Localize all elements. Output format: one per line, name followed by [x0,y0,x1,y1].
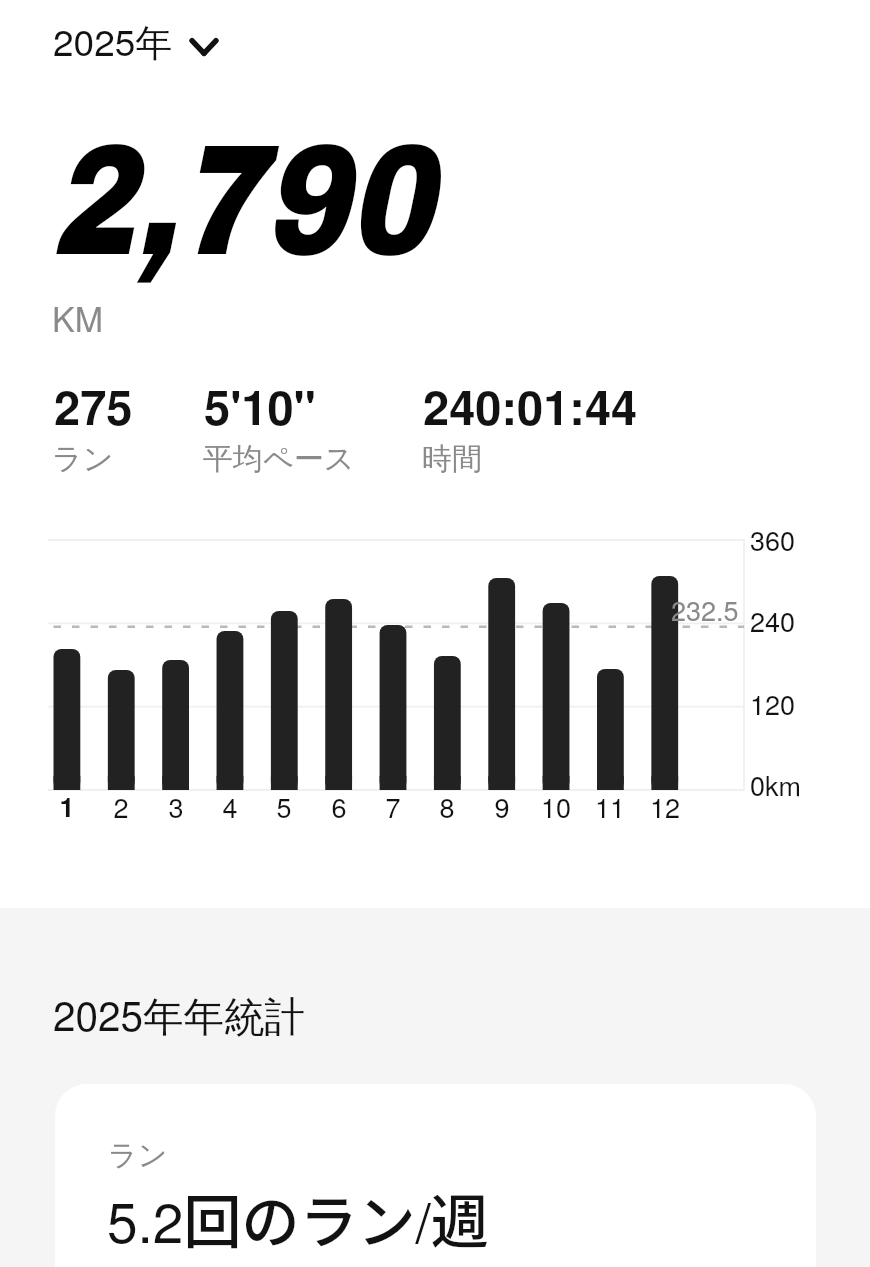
staticText: 4 [200,787,260,826]
staticText: 240 [750,601,796,640]
staticText: 2,790 [50,116,433,287]
button[interactable]: 2025年 [45,8,226,73]
staticText: 10 [526,787,586,826]
staticText: 0km [750,765,802,804]
staticText: 2025年年統計 [53,985,306,1044]
button[interactable]: ラン [55,1084,816,1267]
staticText: 240:01:44 [423,372,638,439]
staticText: 時間 [422,440,482,478]
staticText: 12 [635,787,695,826]
staticText: 11 [580,787,640,826]
staticText: 3 [146,787,206,826]
staticText: 5 [254,787,314,826]
staticText: 9 [472,787,532,826]
staticText: 平均ペース [203,440,355,478]
staticText: 232.5 [671,590,739,629]
staticText: 5'10'' [204,372,316,439]
staticText: 5.2回のラン/週 [107,1176,489,1260]
staticText: 2025年 [53,14,173,67]
staticText: KM [52,293,103,342]
staticText: 120 [750,684,796,723]
staticText: 275 [54,372,133,439]
staticText: 360 [750,520,796,559]
staticText: ラン [108,1137,168,1174]
staticText: 8 [417,787,477,826]
staticText: 1 [37,787,97,826]
staticText: 7 [363,787,423,826]
staticText: ラン [52,440,114,478]
staticText: 6 [309,787,369,826]
staticText: 2 [91,787,151,826]
